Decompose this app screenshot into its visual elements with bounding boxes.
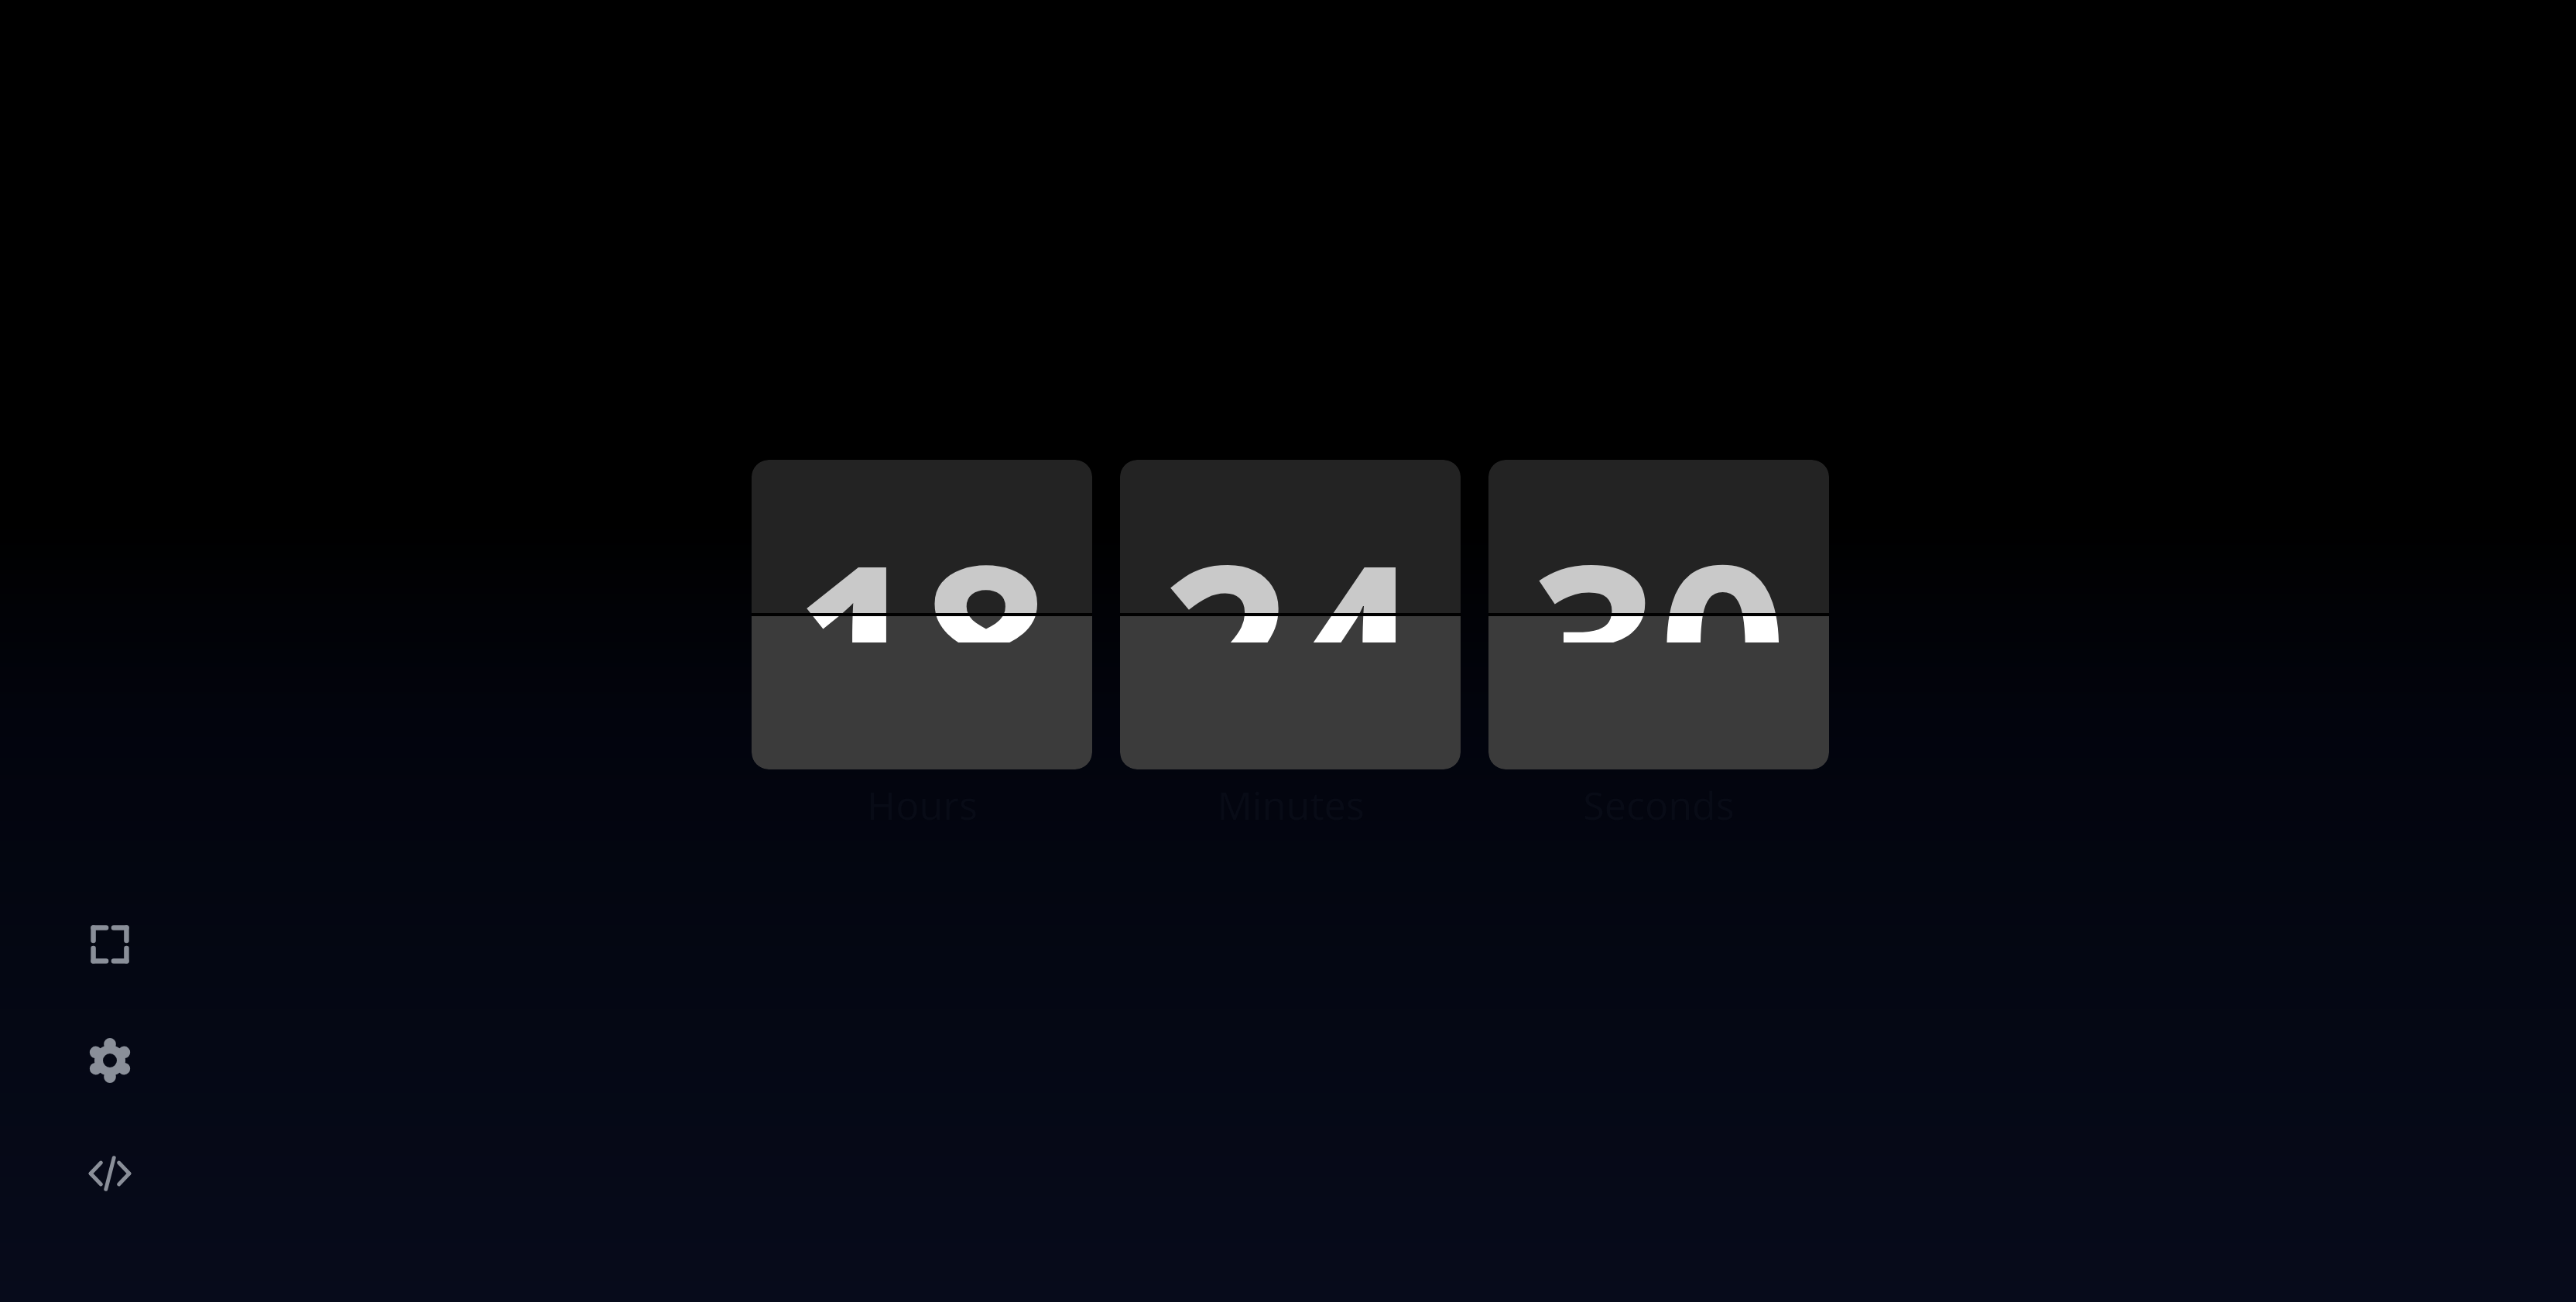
button[interactable]: 30 (1488, 460, 1829, 769)
staticText: 18 (793, 615, 1050, 642)
button[interactable]: Settings (73, 1023, 147, 1098)
staticText: 24 (1162, 488, 1419, 615)
staticText: 30 (1530, 615, 1787, 642)
staticText: 30 (1530, 488, 1787, 615)
button[interactable]: 24 (1120, 460, 1461, 769)
staticText: 24 (1162, 615, 1419, 642)
staticText: 18 (793, 488, 1050, 615)
button[interactable]: Embed code (73, 1136, 147, 1211)
button[interactable]: 18 (752, 460, 1092, 769)
button[interactable]: Fullscreen (73, 907, 147, 982)
